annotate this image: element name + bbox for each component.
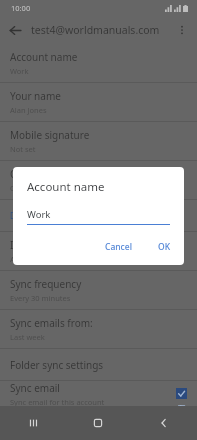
button[interactable]: Home xyxy=(65,406,131,440)
staticText: 10:00 xyxy=(11,3,31,13)
button[interactable]: More options xyxy=(167,16,197,44)
button[interactable]: Account name xyxy=(0,44,197,83)
button[interactable]: Navigate up xyxy=(0,16,30,44)
staticText: Out of Office reply xyxy=(10,167,96,181)
button[interactable]: Sync emails from: xyxy=(0,310,197,349)
staticText: Sync email for this account xyxy=(10,397,105,406)
staticText: Your name xyxy=(10,89,61,103)
staticText: Arrival time xyxy=(10,254,51,264)
button[interactable]: Your name xyxy=(0,83,197,122)
staticText: Mobile signature xyxy=(10,128,90,142)
staticText: Sync emails from: xyxy=(10,316,93,330)
staticText: OK xyxy=(158,241,171,253)
staticText: Work xyxy=(10,66,29,76)
button[interactable]: Cancel xyxy=(98,236,139,258)
staticText: Inbox sorting xyxy=(10,238,73,252)
button[interactable]: Back xyxy=(131,406,197,440)
staticText: Off xyxy=(10,183,22,193)
button[interactable]: Mobile signature xyxy=(0,122,197,161)
button[interactable]: Folder sync settings xyxy=(0,349,197,381)
staticText: Last week xyxy=(10,332,45,342)
staticText: Account name xyxy=(10,50,78,64)
staticText: Work xyxy=(27,208,51,221)
staticText: Sync frequency xyxy=(10,277,82,291)
button[interactable]: Out of Office reply xyxy=(0,161,197,200)
staticText: Account name xyxy=(27,179,105,195)
staticText: Not set xyxy=(10,144,36,154)
staticText: Folder sync settings xyxy=(10,358,104,372)
button[interactable]: Default account xyxy=(0,200,197,232)
staticText: Alan Jones xyxy=(10,105,47,115)
button[interactable]: Work xyxy=(27,208,170,225)
button[interactable]: Sync frequency xyxy=(0,271,197,310)
button[interactable]: Sync email xyxy=(0,381,197,406)
staticText: test4@worldmanuals.com xyxy=(31,23,167,37)
staticText: Sync email xyxy=(10,381,60,395)
staticText: Default account xyxy=(10,210,70,221)
button[interactable]: OK xyxy=(151,236,178,258)
button[interactable]: Recent apps xyxy=(0,406,65,440)
staticText: Every 30 minutes xyxy=(10,293,71,303)
button[interactable]: Inbox sorting xyxy=(0,232,197,271)
staticText: Cancel xyxy=(105,241,132,253)
